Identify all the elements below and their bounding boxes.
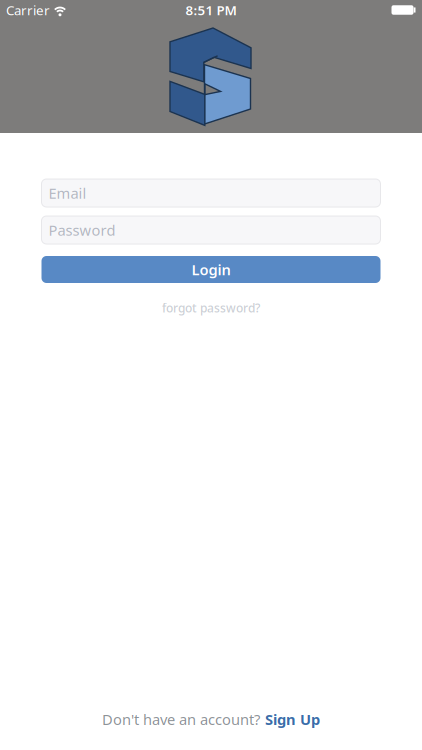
- staticText: Don't have an account?: [102, 709, 260, 729]
- button[interactable]: Sign Up: [265, 709, 320, 729]
- staticText: Login: [191, 260, 230, 279]
- staticText: Password: [48, 220, 115, 240]
- staticText: Carrier: [6, 1, 50, 19]
- button[interactable]: Password: [41, 216, 380, 244]
- staticText: Sign Up: [265, 709, 320, 729]
- staticText: Email: [48, 183, 86, 203]
- button[interactable]: Login: [41, 256, 380, 283]
- button[interactable]: forgot password?: [162, 300, 260, 316]
- button[interactable]: Email: [41, 179, 380, 207]
- staticText: forgot password?: [162, 300, 260, 316]
- staticText: 8:51 PM: [185, 1, 236, 19]
